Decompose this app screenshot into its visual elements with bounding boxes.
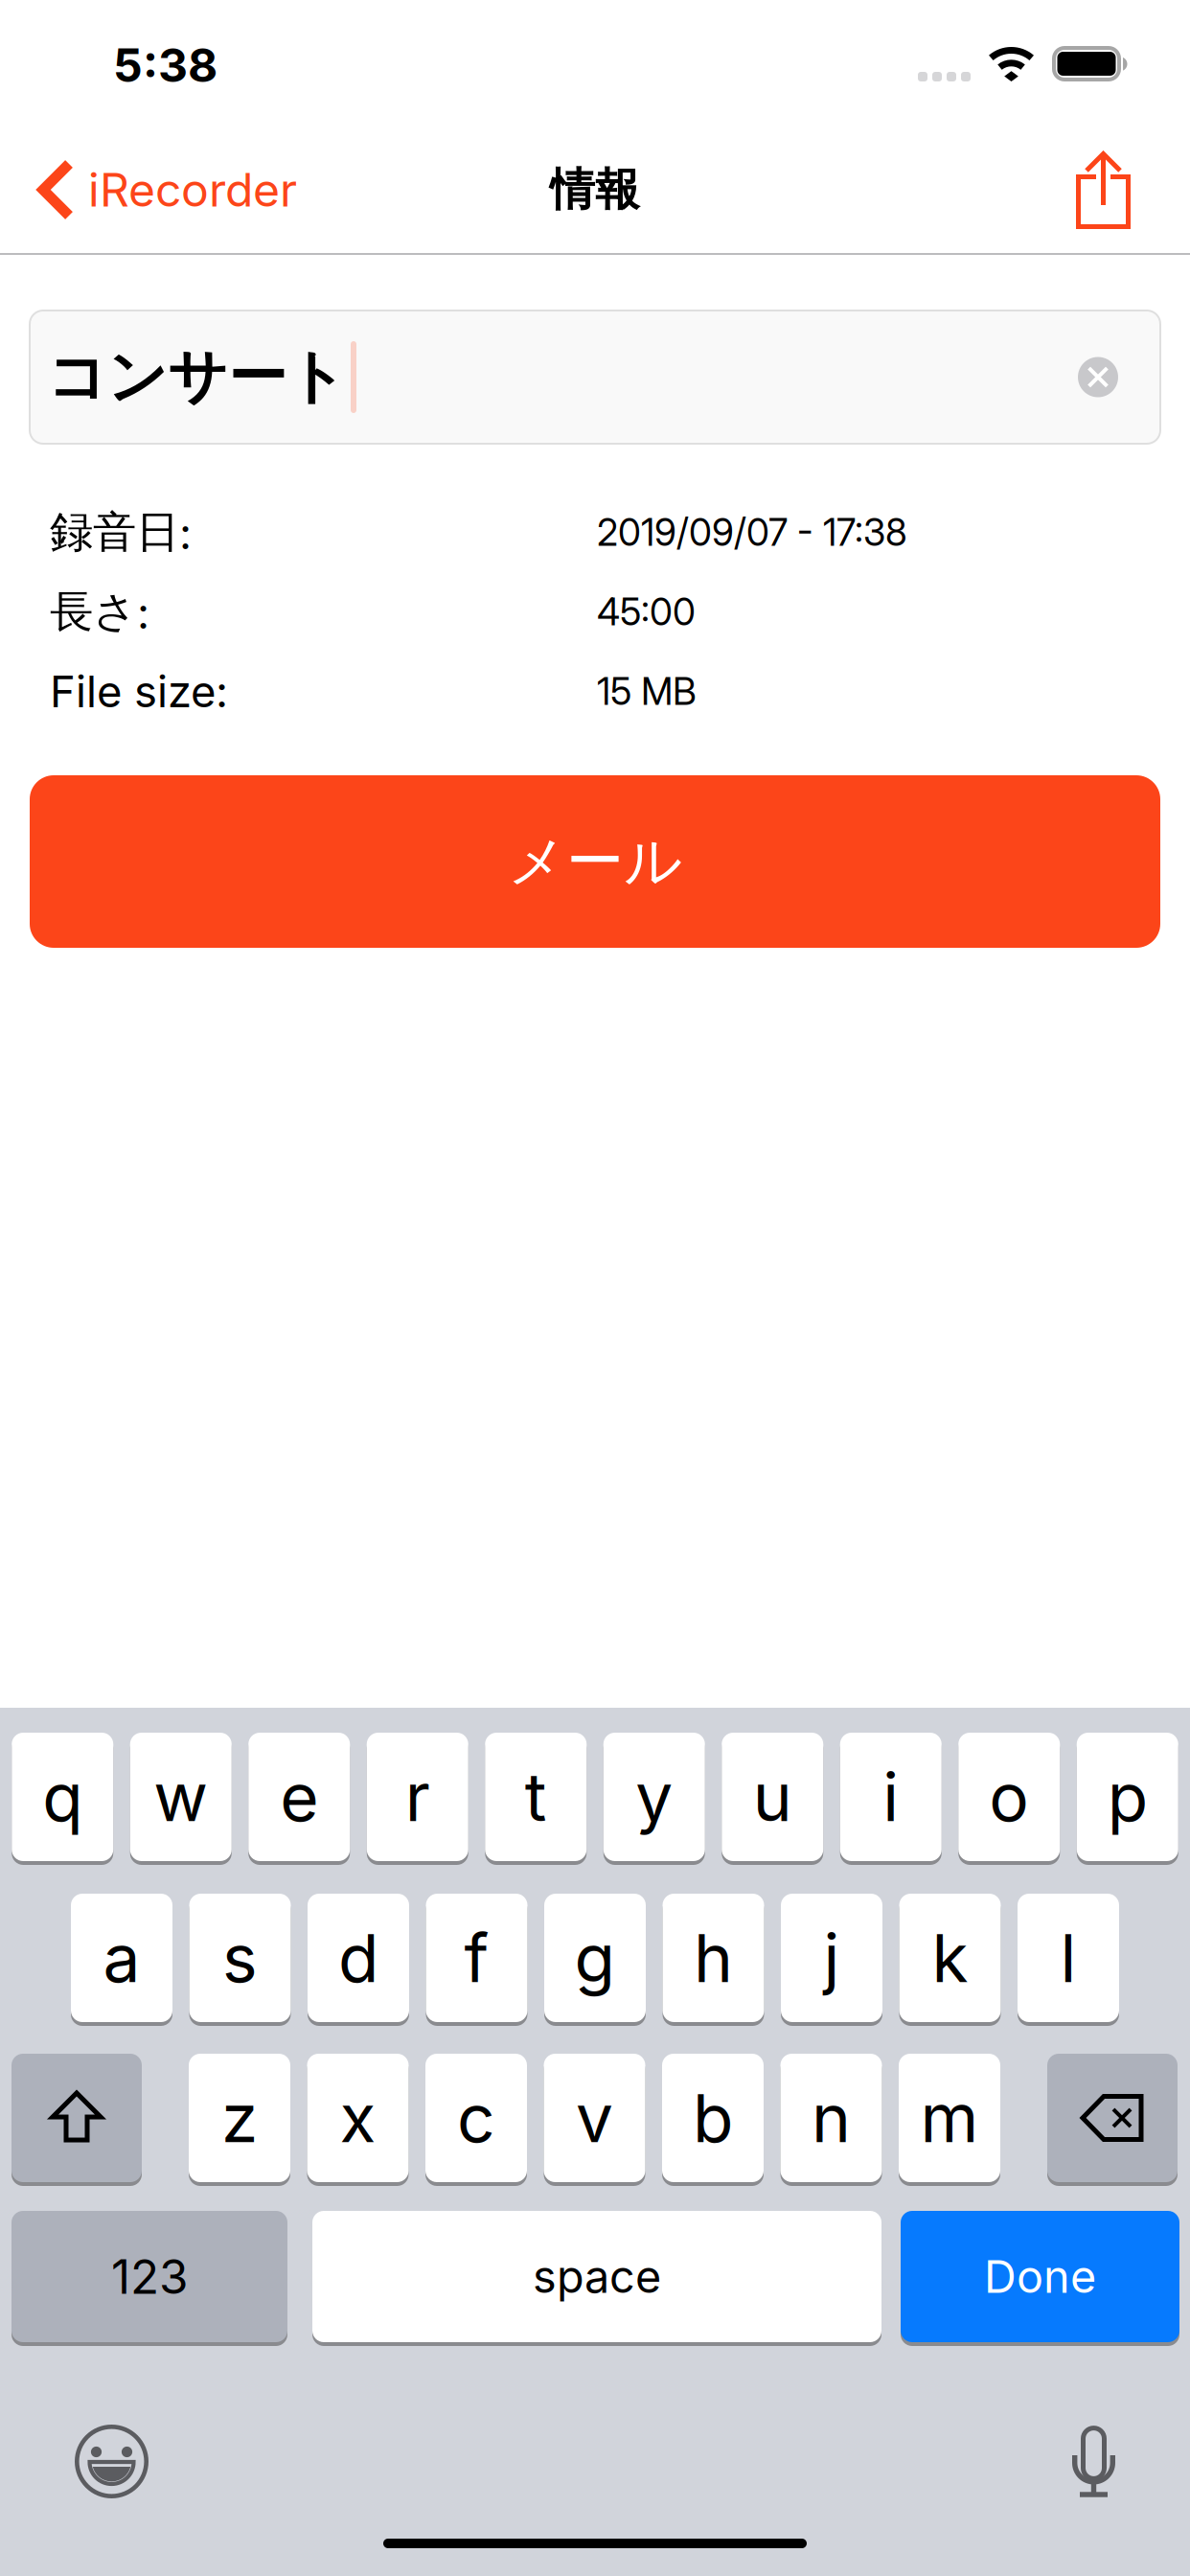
button[interactable]: a xyxy=(71,1894,172,2026)
staticText: 45:00 xyxy=(597,589,696,634)
staticText: 123 xyxy=(111,2248,188,2305)
staticText: i xyxy=(883,1757,899,1837)
staticText: p xyxy=(1107,1757,1148,1837)
staticText: k xyxy=(932,1918,968,1998)
button[interactable]: c xyxy=(425,2054,527,2186)
button[interactable]: i xyxy=(840,1733,942,1865)
button[interactable]: Dictation xyxy=(1072,2426,1115,2497)
button[interactable]: x xyxy=(307,2054,409,2186)
button[interactable]: z xyxy=(189,2054,290,2186)
staticText: b xyxy=(693,2078,733,2158)
button[interactable]: y xyxy=(603,1733,705,1865)
staticText: f xyxy=(464,1918,489,1998)
staticText: iRecorder xyxy=(88,162,297,218)
staticText: o xyxy=(989,1757,1029,1837)
staticText: r xyxy=(405,1757,430,1837)
staticText: d xyxy=(338,1918,378,1998)
button[interactable]: w xyxy=(130,1733,232,1865)
button[interactable]: 123 xyxy=(11,2211,287,2346)
staticText: File size: xyxy=(50,665,228,718)
button[interactable]: メール xyxy=(30,775,1160,948)
button[interactable]: space xyxy=(312,2211,881,2346)
button[interactable]: k xyxy=(899,1894,1001,2026)
staticText: z xyxy=(221,2078,258,2158)
button[interactable]: l xyxy=(1018,1894,1119,2026)
button[interactable] xyxy=(11,2054,142,2186)
button[interactable]: g xyxy=(544,1894,646,2026)
staticText: 5:38 xyxy=(113,37,217,93)
staticText: 2019/09/07 - 17:38 xyxy=(597,510,907,555)
button[interactable]: b xyxy=(662,2054,764,2186)
button[interactable]: Done xyxy=(901,2211,1179,2346)
button[interactable]: d xyxy=(308,1894,409,2026)
button[interactable]: q xyxy=(12,1733,113,1865)
button[interactable]: o xyxy=(958,1733,1060,1865)
staticText: space xyxy=(533,2249,661,2304)
staticText: m xyxy=(920,2078,979,2158)
staticText: c xyxy=(457,2078,495,2158)
staticText: w xyxy=(153,1757,208,1837)
staticText: メール xyxy=(508,825,682,898)
button[interactable]: Share xyxy=(1076,126,1190,253)
staticText: v xyxy=(576,2078,613,2158)
button[interactable]: m xyxy=(899,2054,1000,2186)
staticText: u xyxy=(753,1757,792,1837)
button[interactable]: n xyxy=(780,2054,882,2186)
button[interactable]: u xyxy=(722,1733,823,1865)
button[interactable]: h xyxy=(663,1894,764,2026)
button[interactable]: f xyxy=(426,1894,527,2026)
staticText: a xyxy=(103,1918,140,1998)
staticText: 録音日: xyxy=(50,505,192,560)
staticText: s xyxy=(222,1918,258,1998)
button[interactable]: v xyxy=(544,2054,645,2186)
staticText: j xyxy=(824,1918,840,1998)
button[interactable]: j xyxy=(781,1894,882,2026)
button[interactable]: s xyxy=(189,1894,291,2026)
staticText: n xyxy=(812,2078,851,2158)
staticText: 15 MB xyxy=(597,669,697,714)
staticText: コンサート xyxy=(47,340,347,414)
staticText: y xyxy=(635,1757,673,1837)
staticText: Done xyxy=(984,2249,1096,2304)
button[interactable]: t xyxy=(485,1733,587,1865)
button[interactable]: Clear text xyxy=(1055,334,1160,420)
staticText: e xyxy=(280,1757,318,1837)
staticText: q xyxy=(42,1757,83,1837)
staticText: h xyxy=(694,1918,733,1998)
staticText: 情報 xyxy=(550,162,640,218)
button[interactable]: iRecorder xyxy=(0,126,297,253)
staticText: t xyxy=(525,1757,547,1837)
button[interactable]: p xyxy=(1077,1733,1178,1865)
button[interactable] xyxy=(1047,2054,1178,2186)
button[interactable]: r xyxy=(367,1733,468,1865)
staticText: l xyxy=(1060,1918,1076,1998)
button[interactable]: e xyxy=(248,1733,350,1865)
staticText: x xyxy=(340,2078,376,2158)
button[interactable]: Emoji keyboard xyxy=(75,2425,149,2498)
staticText: g xyxy=(574,1918,616,1998)
staticText: 長さ: xyxy=(50,584,149,639)
